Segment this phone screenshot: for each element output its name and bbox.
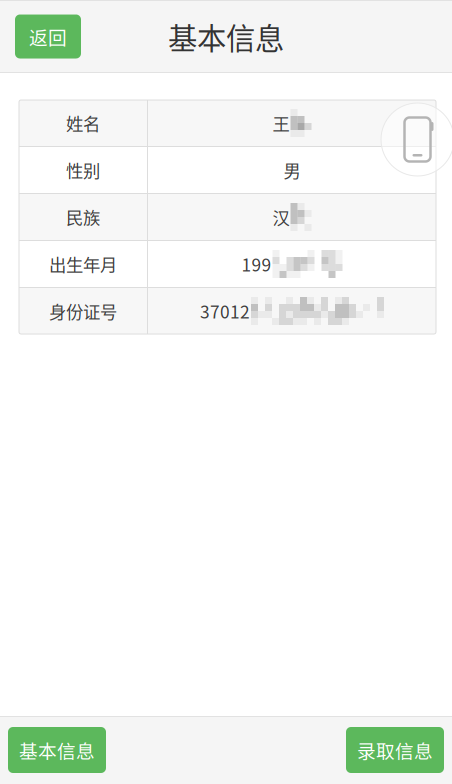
staticText: 汉 [272,204,289,230]
staticText: 性别 [66,157,100,183]
staticText: 民族 [66,204,100,230]
staticText: 王 [272,110,289,136]
staticText: 身份证号 [49,298,117,324]
staticText: 男 [283,157,300,183]
staticText: 基本信息 [168,15,284,58]
staticText: 返回 [29,23,67,50]
staticText: 录取信息 [357,736,433,763]
button[interactable]: 录取信息 [346,727,444,773]
staticText: 姓名 [66,110,100,136]
button[interactable]: Device preview [381,103,452,176]
staticText: 37012 [200,298,250,324]
staticText: 199 [241,251,271,277]
button[interactable]: 基本信息 [8,727,106,773]
staticText: 基本信息 [19,736,95,763]
button[interactable]: 返回 [15,14,81,58]
staticText: 出生年月 [49,251,117,277]
